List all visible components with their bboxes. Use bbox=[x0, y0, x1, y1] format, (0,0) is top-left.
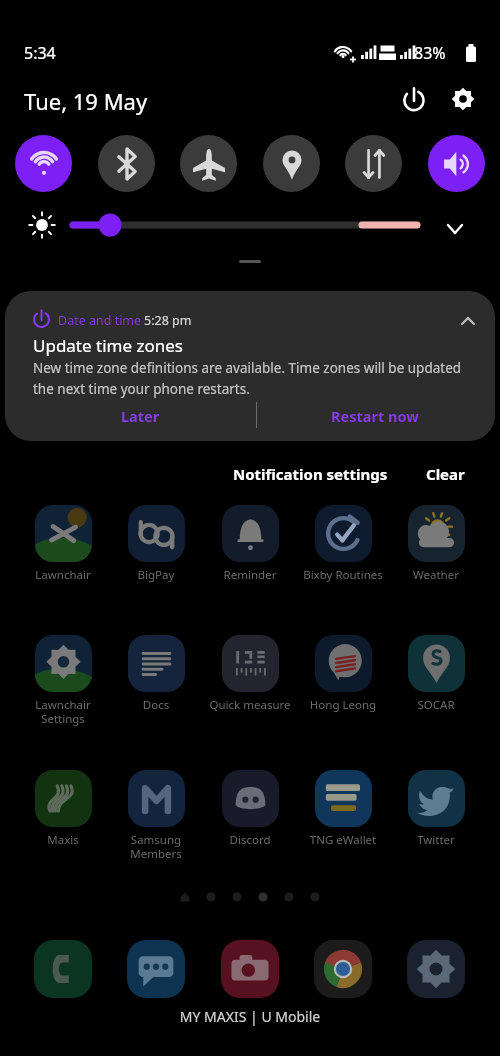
staticText: Hong Leong bbox=[297, 697, 389, 713]
staticText: Reminder bbox=[204, 567, 296, 583]
button[interactable]: Flight mode bbox=[180, 135, 237, 192]
button[interactable]: Phone bbox=[34, 940, 92, 998]
staticText: SOCAR bbox=[390, 697, 482, 713]
staticText: Restart now bbox=[331, 406, 419, 426]
button[interactable]: TNG eWallet bbox=[297, 770, 389, 862]
button[interactable]: Lawnchair bbox=[17, 505, 109, 597]
staticText: Twitter bbox=[390, 832, 482, 848]
button[interactable]: Power bbox=[393, 78, 435, 120]
button[interactable]: Lawnchair Settings bbox=[17, 635, 109, 727]
button[interactable]: Quick measure bbox=[204, 635, 296, 727]
button[interactable]: Discord bbox=[204, 770, 296, 862]
button[interactable]: Reminder bbox=[204, 505, 296, 597]
button[interactable]: Weather bbox=[390, 505, 482, 597]
button[interactable]: Docs bbox=[110, 635, 202, 727]
button[interactable]: Mobile data bbox=[345, 135, 402, 192]
button[interactable]: SOCAR bbox=[390, 635, 482, 727]
staticText: Notification settings bbox=[233, 464, 388, 484]
button[interactable]: Settings bbox=[442, 78, 484, 120]
button[interactable]: Collapse bbox=[448, 301, 488, 341]
button[interactable]: Maxis bbox=[17, 770, 109, 862]
staticText: Quick measure bbox=[204, 697, 296, 713]
staticText: Lawnchair Settings bbox=[17, 697, 109, 726]
staticText: MY MAXIS | U Mobile bbox=[0, 1007, 500, 1026]
button[interactable]: Camera bbox=[221, 940, 279, 998]
staticText: TNG eWallet bbox=[297, 832, 389, 848]
button[interactable]: Hong Leong bbox=[297, 635, 389, 727]
button[interactable]: Wi-Fi bbox=[15, 135, 72, 192]
staticText: Weather bbox=[390, 567, 482, 583]
staticText: Maxis bbox=[17, 832, 109, 848]
staticText: Discord bbox=[204, 832, 296, 848]
button[interactable]: Settings bbox=[407, 940, 465, 998]
button[interactable]: Bluetooth bbox=[98, 135, 155, 192]
button[interactable]: Chrome bbox=[314, 940, 372, 998]
staticText: Later bbox=[121, 406, 160, 426]
button[interactable]: Bixby Routines bbox=[297, 505, 389, 597]
staticText: Clear bbox=[426, 464, 465, 484]
button[interactable]: Location bbox=[263, 135, 320, 192]
staticText: Update time zones bbox=[33, 334, 183, 357]
staticText: Samsung Members bbox=[110, 832, 202, 861]
staticText: Lawnchair bbox=[17, 567, 109, 583]
staticText: Date and time bbox=[58, 312, 142, 329]
button[interactable]: Restart now bbox=[260, 396, 490, 436]
staticText: 5:28 pm bbox=[144, 312, 192, 329]
staticText: Bixby Routines bbox=[297, 567, 389, 583]
button[interactable]: Samsung Members bbox=[110, 770, 202, 862]
button[interactable]: Expand bbox=[436, 210, 474, 248]
staticText: Tue, 19 May bbox=[24, 86, 148, 116]
staticText: 83% bbox=[414, 42, 446, 64]
button[interactable]: Notification settings bbox=[227, 458, 393, 490]
staticText: BigPay bbox=[110, 567, 202, 583]
button[interactable]: Clear bbox=[409, 458, 481, 490]
button[interactable]: Date and time bbox=[5, 291, 495, 441]
button[interactable]: Twitter bbox=[390, 770, 482, 862]
button[interactable]: Sound bbox=[428, 135, 485, 192]
button[interactable]: Messages bbox=[127, 940, 185, 998]
staticText: 5:34 bbox=[24, 42, 56, 64]
button[interactable]: Brightness bbox=[68, 209, 428, 241]
staticText: New time zone definitions are available.… bbox=[33, 359, 470, 398]
staticText: Docs bbox=[110, 697, 202, 713]
button[interactable]: BigPay bbox=[110, 505, 202, 597]
button[interactable]: Later bbox=[25, 396, 255, 436]
